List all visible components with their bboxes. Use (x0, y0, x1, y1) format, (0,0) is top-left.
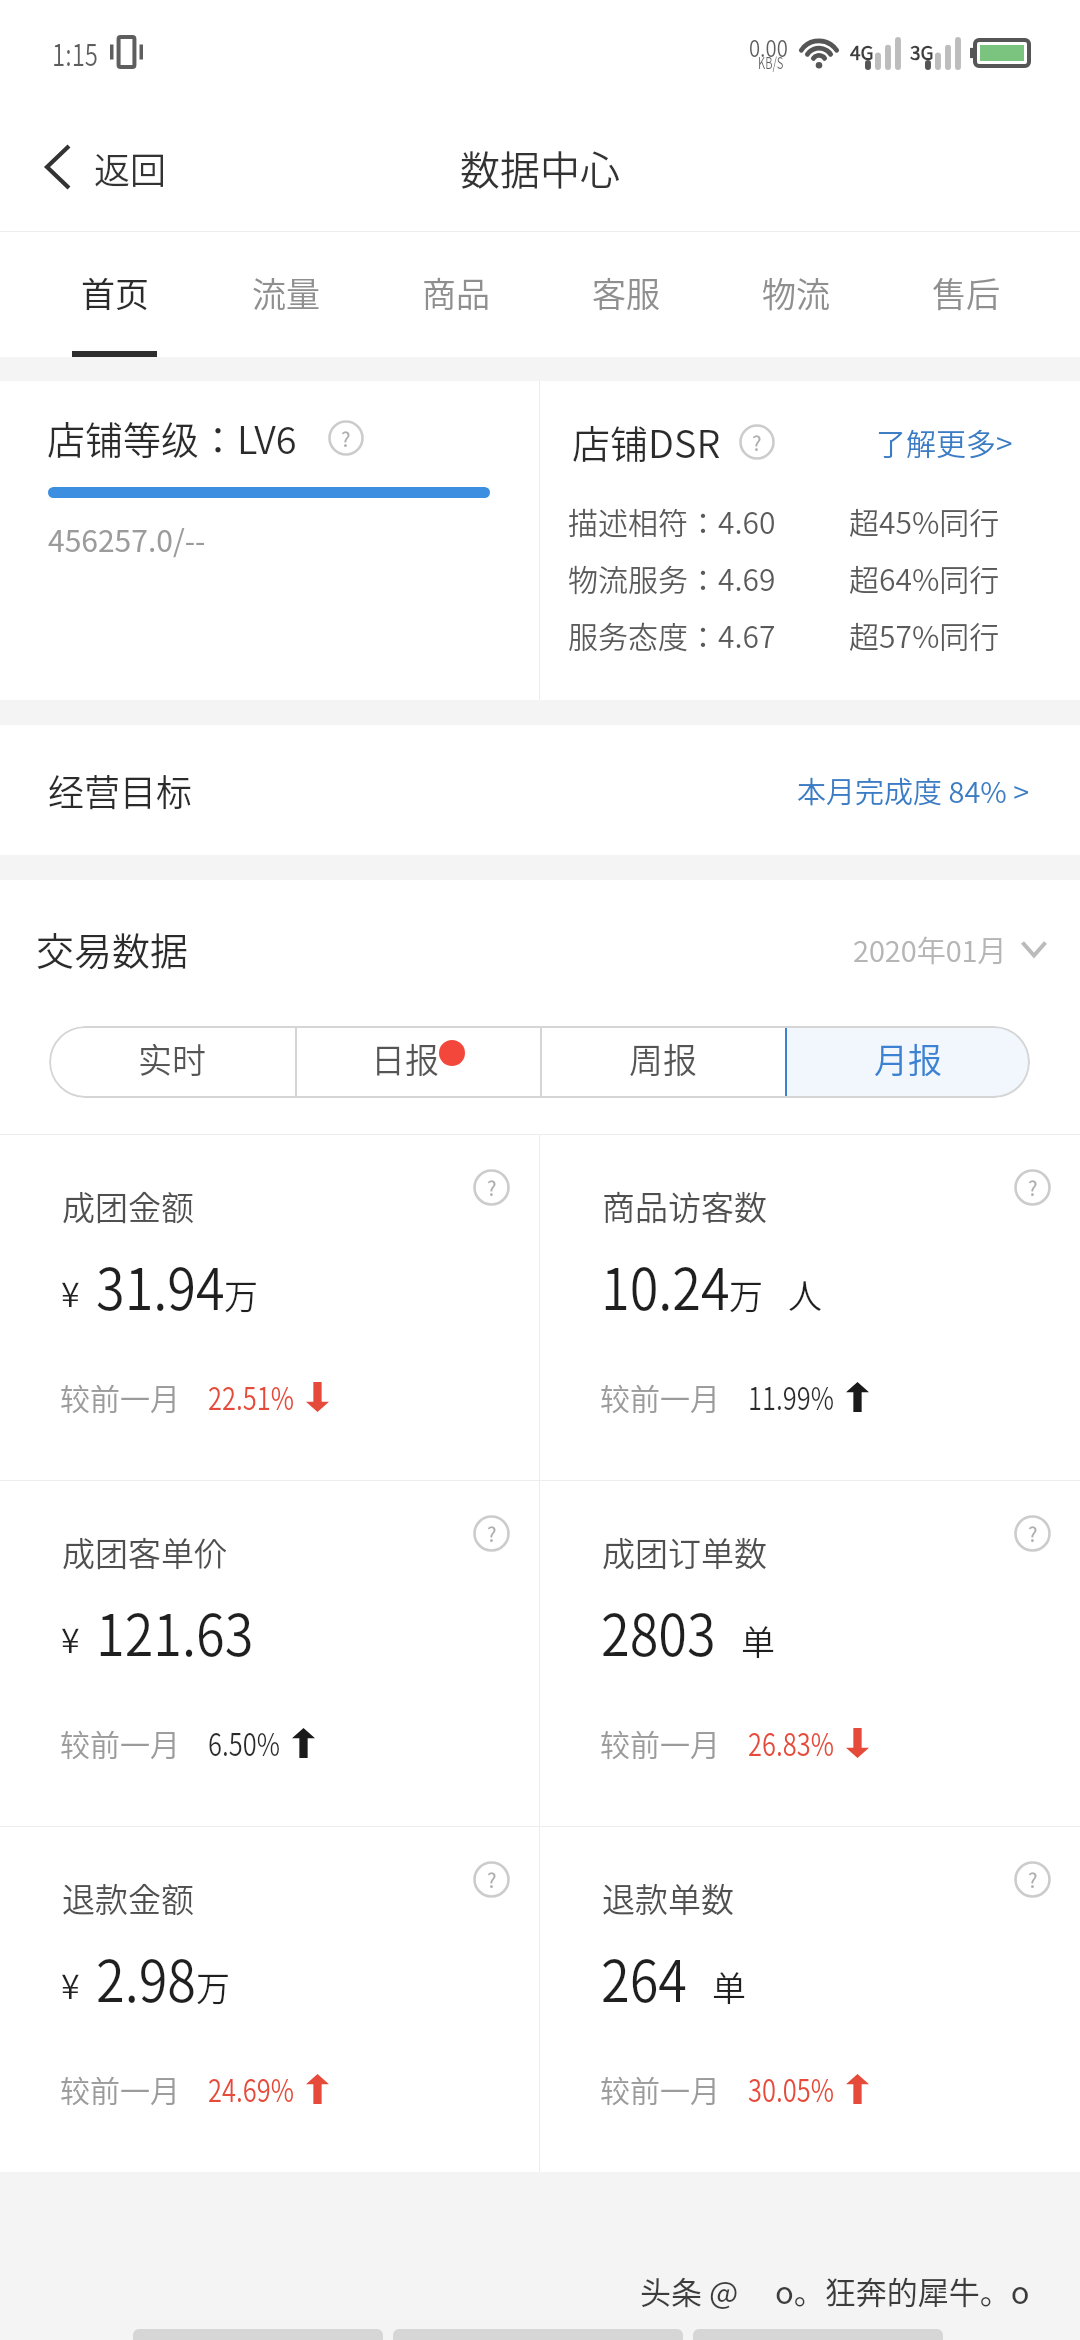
staticText: ? (487, 1519, 497, 1548)
staticText: 客服 (592, 268, 660, 317)
staticText: 本月完成度 84% > (797, 769, 1030, 811)
staticText: 售后 (932, 268, 1000, 317)
button[interactable]: 2020年01月 (853, 928, 1047, 970)
button[interactable]: Help (473, 1169, 510, 1206)
staticText: 0.00 (749, 30, 789, 63)
staticText: 10.24 (601, 1243, 730, 1327)
staticText: 较前一月 (60, 2067, 180, 2110)
staticText: 超57%同行 (849, 613, 1000, 656)
staticText: 30.05% (748, 2066, 834, 2111)
button[interactable]: 店铺DSR (540, 381, 1080, 700)
staticText: ? (752, 428, 762, 457)
staticText: 物流 (762, 268, 830, 317)
staticText: 描述相符：4.60 (568, 499, 776, 542)
button[interactable]: Help (473, 1515, 510, 1552)
staticText: 31.94 (96, 1243, 225, 1327)
staticText: 周报 (629, 1034, 697, 1083)
staticText: 2803 (601, 1589, 716, 1673)
staticText: KB/S (758, 50, 784, 73)
staticText: 超45%同行 (849, 499, 1000, 542)
staticText: 3G (910, 38, 934, 66)
button[interactable]: Help (1014, 1861, 1051, 1898)
staticText: 人 (788, 1270, 822, 1319)
button[interactable]: 商品 (371, 232, 541, 357)
staticText: 店铺DSR (572, 414, 721, 469)
staticText: 万 (729, 1270, 763, 1319)
button[interactable]: 日报 (295, 1026, 540, 1098)
staticText: 物流服务：4.69 (568, 556, 776, 599)
button[interactable]: 物流 (711, 232, 881, 357)
staticText: 了解更多> (876, 420, 1013, 463)
button[interactable]: 退款单数 (540, 1827, 1080, 2172)
button[interactable]: 首页 (29, 232, 200, 357)
staticText: ¥ (61, 1960, 80, 2009)
staticText: ? (1028, 1519, 1038, 1548)
staticText: 较前一月 (600, 1375, 720, 1418)
staticText: 商品 (422, 268, 490, 317)
staticText: ? (1028, 1865, 1038, 1894)
staticText: o。狂奔的犀牛。o (775, 2268, 1030, 2313)
staticText: 121.63 (96, 1589, 253, 1673)
button[interactable]: 成团金额 (0, 1135, 539, 1480)
staticText: 流量 (252, 268, 320, 317)
button[interactable]: 店铺等级：LV6 (0, 381, 539, 700)
button[interactable]: 月报 (785, 1026, 1030, 1098)
staticText: 退款金额 (62, 1874, 194, 1922)
staticText: ? (341, 424, 351, 453)
staticText: 商品访客数 (602, 1182, 767, 1230)
staticText: 日报 (371, 1034, 439, 1083)
staticText: ¥ (61, 1614, 80, 1663)
staticText: 经营目标 (48, 764, 193, 816)
button[interactable]: 售后 (881, 232, 1051, 357)
staticText: ¥ (61, 1268, 80, 1317)
staticText: 成团订单数 (602, 1528, 767, 1576)
staticText: 24.69% (208, 2066, 294, 2111)
button[interactable]: Help (1014, 1169, 1051, 1206)
staticText: 交易数据 (36, 921, 189, 976)
staticText: 万 (196, 1962, 230, 2011)
staticText: 较前一月 (60, 1375, 180, 1418)
staticText: 较前一月 (600, 2067, 720, 2110)
staticText: 较前一月 (60, 1721, 180, 1764)
staticText: 26.83% (748, 1720, 834, 1765)
staticText: 首页 (81, 268, 149, 317)
staticText: 实时 (138, 1034, 206, 1083)
button[interactable]: Help (1014, 1515, 1051, 1552)
staticText: 头条 @ (640, 2268, 739, 2313)
button[interactable]: 实时 (49, 1026, 295, 1098)
staticText: 较前一月 (600, 1721, 720, 1764)
button[interactable]: 流量 (200, 232, 371, 357)
button[interactable]: Back (0, 120, 193, 212)
button[interactable]: 成团客单价 (0, 1481, 539, 1826)
staticText: 店铺等级：LV6 (47, 410, 297, 465)
staticText: 服务态度：4.67 (568, 613, 776, 656)
staticText: 数据中心 (460, 139, 620, 197)
button[interactable]: 客服 (541, 232, 711, 357)
staticText: 超64%同行 (849, 556, 1000, 599)
staticText: 264 (601, 1935, 687, 2019)
staticText: ? (487, 1173, 497, 1202)
staticText: 单 (712, 1962, 746, 2011)
staticText: 返回 (94, 142, 167, 194)
staticText: 单 (741, 1616, 775, 1665)
staticText: 月报 (874, 1034, 942, 1083)
staticText: ? (487, 1865, 497, 1894)
button[interactable]: Help (473, 1861, 510, 1898)
staticText: 成团客单价 (62, 1528, 227, 1576)
staticText: 6.50% (208, 1720, 280, 1765)
staticText: 成团金额 (62, 1182, 194, 1230)
staticText: 2020年01月 (853, 928, 1007, 970)
staticText: 万 (224, 1270, 258, 1319)
button[interactable]: 退款金额 (0, 1827, 539, 2172)
staticText: 1:15 (52, 31, 98, 74)
button[interactable]: 成团订单数 (540, 1481, 1080, 1826)
button[interactable]: 经营目标 (0, 725, 1080, 855)
staticText: 4G (850, 38, 874, 66)
button[interactable]: 周报 (540, 1026, 785, 1098)
staticText: ? (1028, 1173, 1038, 1202)
staticText: 456257.0/-- (48, 517, 206, 560)
button[interactable]: 商品访客数 (540, 1135, 1080, 1480)
